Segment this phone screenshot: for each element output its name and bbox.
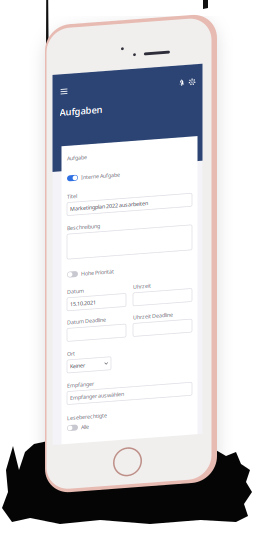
button[interactable] [67,236,192,261]
button[interactable]: 15.10.2021 [67,299,126,312]
staticText: Hohe Priorität [81,273,114,280]
staticText: Uhrzeit [133,290,151,297]
staticText: Titel [67,195,77,202]
staticText: Interne Aufgabe [81,177,120,184]
staticText: Datum Deadline [67,320,106,328]
button[interactable] [133,299,192,312]
staticText: Keiner [70,365,85,372]
staticText: Empfänger [67,384,94,391]
button[interactable] [133,330,192,343]
staticText: Empfänger auswählen [70,396,124,403]
staticText: Leseberechtigte [67,416,107,423]
staticText: Marketingplan 2022 ausarbeiten [70,207,148,214]
button[interactable]: Menu [60,90,67,95]
staticText: Beschreibung [67,226,100,233]
button[interactable] [67,330,126,343]
button[interactable]: Marketingplan 2022 ausarbeiten [67,204,192,217]
staticText: Uhrzeit Deadline [133,320,173,328]
staticText: Aufgabe [67,156,87,164]
staticText: Aufgaben [59,107,102,120]
button[interactable]: Empfänger auswählen [67,393,192,406]
button[interactable]: Alle [67,426,192,433]
staticText: Alle [81,426,89,433]
button[interactable]: Interne Aufgabe [67,177,192,184]
staticText: Datum [67,290,84,297]
staticText: Ort [67,352,75,359]
button[interactable]: Keiner [67,362,111,375]
button[interactable]: Hohe Priorität [67,273,192,280]
staticText: 15.10.2021 [70,302,96,310]
